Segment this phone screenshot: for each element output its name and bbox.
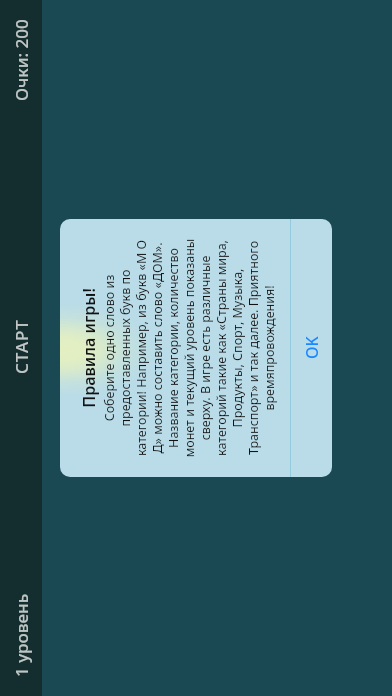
staticText: Соберите одно слово из предоставленных б… [101, 236, 278, 460]
staticText: Очки: 200 [10, 19, 33, 101]
button[interactable]: 1 уровень [10, 593, 33, 677]
staticText: Правила игры! [78, 235, 100, 461]
staticText: СТАРТ [10, 319, 33, 374]
staticText: 1 уровень [10, 593, 33, 677]
button[interactable]: Очки: 200 [10, 19, 33, 101]
staticText: OK [301, 336, 323, 359]
button[interactable]: OK [291, 219, 332, 477]
